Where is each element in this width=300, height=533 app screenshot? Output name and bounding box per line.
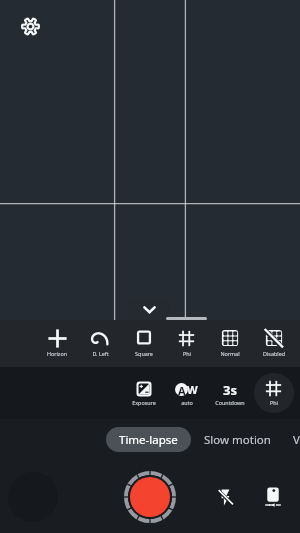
staticText: 3s [223,381,237,397]
staticText: W [187,382,198,397]
button[interactable]: Horizon [35,320,78,367]
button[interactable]: D. Left [78,320,121,367]
staticText: Countdown [215,399,245,406]
button[interactable]: Square [122,320,165,367]
button[interactable]: Slow motion [195,427,280,452]
staticText: Video [293,432,300,448]
staticText: auto [181,399,193,406]
staticText: Exposure [132,399,156,406]
button[interactable]: Record [123,470,177,524]
button[interactable]: Phi [165,320,208,367]
button[interactable]: Settings [16,12,44,40]
staticText: A [178,383,186,396]
staticText: Horizon [47,350,67,357]
button[interactable]: Flash off [207,479,243,515]
staticText: Square [135,350,153,357]
button[interactable]: Switch camera [255,479,291,515]
button[interactable]: Disabled [252,320,295,367]
staticText: Phi [183,350,191,357]
staticText: Disabled [263,350,285,357]
button[interactable]: Time-lapse [106,427,191,452]
button[interactable]: Exposure [122,367,165,419]
button[interactable]: Phi [252,367,295,419]
staticText: Slow motion [204,432,271,448]
staticText: Phi [270,399,278,406]
button[interactable]: Video [293,427,300,452]
button[interactable]: 3s [208,367,251,419]
staticText: D. Left [92,350,109,357]
staticText: Normal [220,350,240,357]
button[interactable]: A [165,367,208,419]
staticText: Time-lapse [119,432,178,448]
button[interactable]: Collapse controls [129,299,170,320]
button[interactable]: Normal [208,320,251,367]
